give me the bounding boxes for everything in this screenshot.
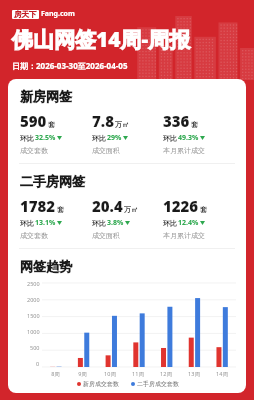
staticText: 49.3% bbox=[178, 133, 199, 143]
staticText: 32.5% bbox=[35, 133, 56, 143]
button[interactable]: 房天下 bbox=[12, 9, 75, 19]
staticText: 套 bbox=[57, 205, 64, 214]
staticText: 成交面积 bbox=[92, 231, 120, 240]
staticText: 二手房网签 bbox=[20, 173, 85, 189]
staticText: 0 bbox=[36, 360, 40, 367]
button[interactable]: 网签趋势 bbox=[8, 249, 246, 393]
staticText: 1226 bbox=[163, 196, 199, 216]
staticText: 3.8% bbox=[107, 218, 124, 228]
button[interactable]: 新房网签 bbox=[8, 79, 246, 163]
staticText: 套 bbox=[191, 120, 198, 129]
staticText: 本月累计成交 bbox=[163, 146, 205, 155]
staticText: 网签趋势 bbox=[20, 258, 72, 274]
staticText: 环比 bbox=[163, 134, 177, 143]
staticText: 环比 bbox=[92, 219, 106, 228]
staticText: Fang.com bbox=[41, 9, 75, 19]
button[interactable]: 二手房成交套数 bbox=[131, 380, 179, 388]
staticText: 成交套数 bbox=[20, 146, 48, 155]
staticText: 佛山网签14周-周报 bbox=[12, 25, 191, 54]
staticText: 二手房成交套数 bbox=[137, 380, 179, 388]
staticText: 2000 bbox=[27, 296, 40, 303]
staticText: 环比 bbox=[20, 134, 34, 143]
staticText: 336 bbox=[163, 111, 190, 131]
staticText: 环比 bbox=[92, 134, 106, 143]
staticText: 7.8 bbox=[92, 111, 114, 131]
staticText: 20.4 bbox=[92, 196, 123, 216]
staticText: 万㎡ bbox=[115, 120, 129, 129]
staticText: 9周 bbox=[78, 370, 87, 378]
staticText: 1782 bbox=[20, 196, 56, 216]
staticText: 500 bbox=[30, 344, 40, 351]
staticText: 套 bbox=[200, 205, 207, 214]
staticText: 13周 bbox=[188, 370, 200, 378]
button[interactable]: 二手房网签 bbox=[8, 164, 246, 248]
staticText: 成交面积 bbox=[92, 146, 120, 155]
staticText: 10周 bbox=[104, 370, 116, 378]
button[interactable]: 新房成交套数 bbox=[77, 380, 119, 388]
staticText: 环比 bbox=[163, 219, 177, 228]
staticText: 590 bbox=[20, 111, 47, 131]
staticText: 1000 bbox=[27, 328, 40, 335]
staticText: 12周 bbox=[160, 370, 172, 378]
staticText: 房天下 bbox=[14, 10, 37, 19]
staticText: 套 bbox=[48, 120, 55, 129]
staticText: 14周 bbox=[216, 370, 228, 378]
staticText: 1500 bbox=[27, 312, 40, 319]
staticText: 新房成交套数 bbox=[83, 380, 119, 388]
staticText: 2500 bbox=[27, 280, 40, 287]
staticText: 万㎡ bbox=[124, 205, 138, 214]
staticText: 日期：2026-03-30至2026-04-05 bbox=[12, 60, 128, 71]
staticText: 新房网签 bbox=[20, 88, 72, 104]
staticText: 13.1% bbox=[35, 218, 56, 228]
staticText: 29% bbox=[107, 133, 122, 143]
staticText: 环比 bbox=[20, 219, 34, 228]
staticText: 12.4% bbox=[178, 218, 199, 228]
staticText: 成交套数 bbox=[20, 231, 48, 240]
staticText: 本月累计成交 bbox=[163, 231, 205, 240]
staticText: 8周 bbox=[51, 370, 60, 378]
staticText: 11周 bbox=[132, 370, 144, 378]
